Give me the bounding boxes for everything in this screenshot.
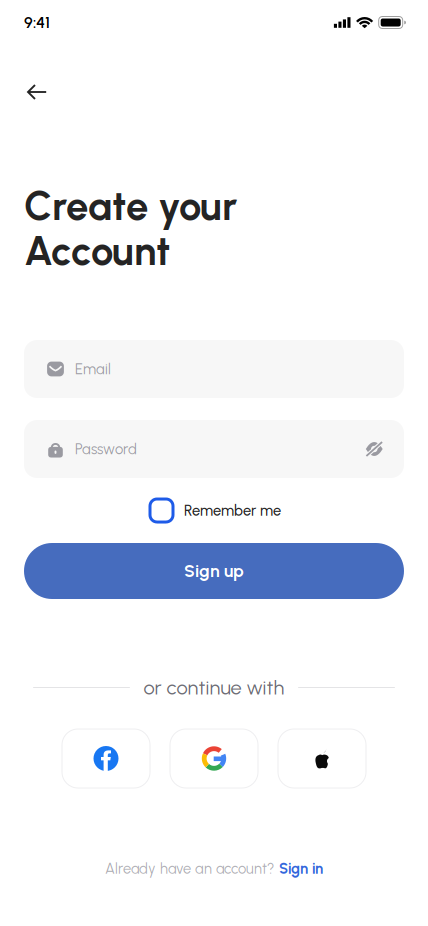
button[interactable]: Sign up (24, 543, 404, 599)
staticText: 9:41 (24, 13, 50, 32)
button[interactable]: Password (24, 420, 404, 478)
button[interactable]: Continue with Facebook (62, 729, 150, 788)
staticText: Remember me (184, 502, 281, 519)
staticText: Email (75, 360, 111, 378)
button[interactable]: Remember me (0, 499, 428, 522)
button[interactable]: Already have an account? (0, 860, 428, 877)
button[interactable]: Continue with Apple (278, 729, 366, 788)
staticText: Sign in (279, 860, 323, 877)
staticText: Create your (24, 182, 237, 230)
staticText: Account (24, 227, 170, 275)
staticText: Already have an account? (105, 860, 274, 877)
staticText: or continue with (143, 675, 284, 699)
button[interactable]: Back (20, 76, 71, 108)
staticText: Sign up (184, 561, 244, 581)
button[interactable]: Continue with Google (170, 729, 258, 788)
staticText: Password (75, 440, 137, 458)
button[interactable]: Email (24, 340, 404, 398)
